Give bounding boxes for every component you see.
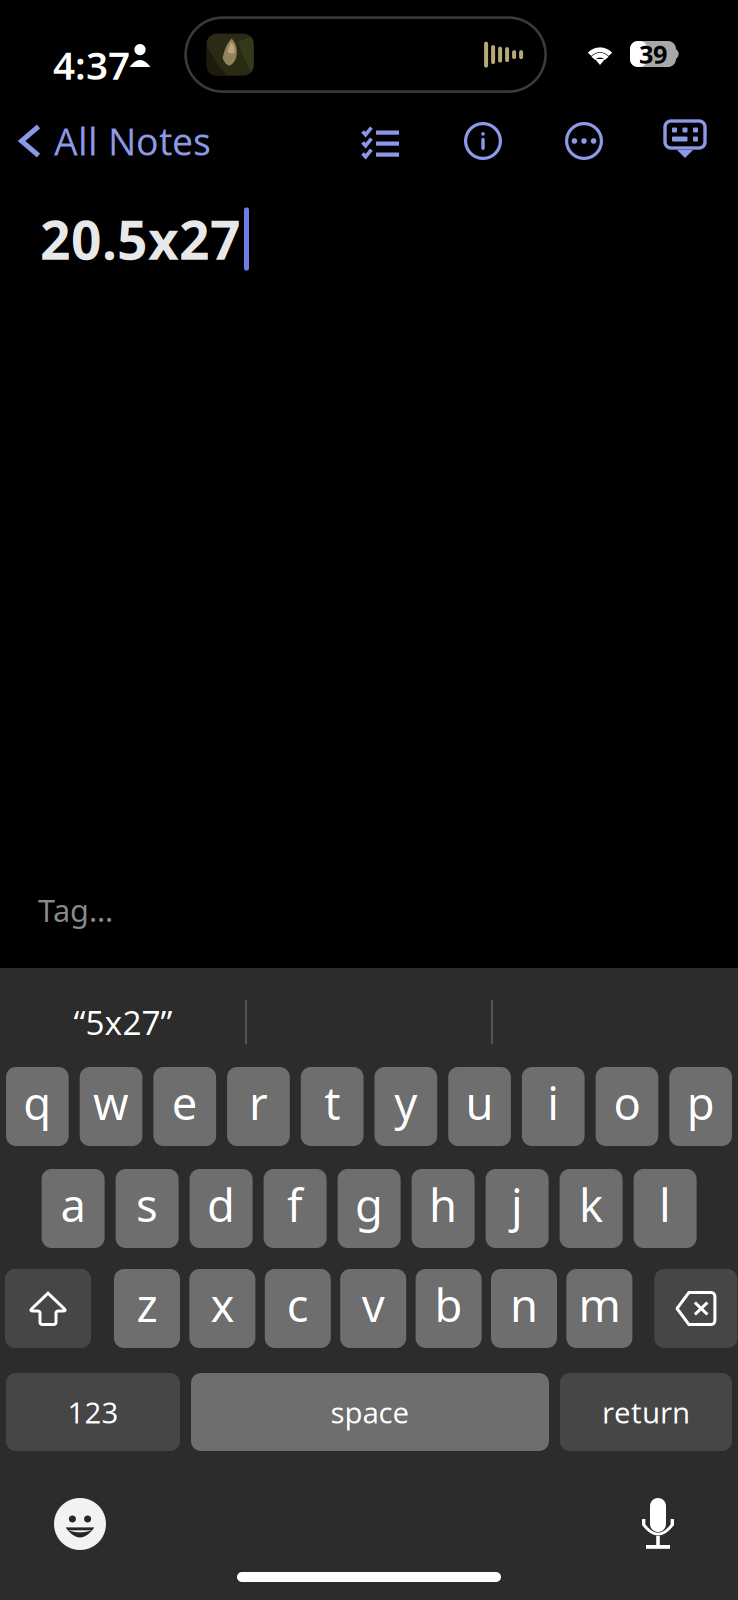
button[interactable]: a — [42, 1169, 105, 1248]
staticText: j — [511, 1174, 523, 1235]
button[interactable]: g — [338, 1169, 401, 1248]
staticText: o — [613, 1072, 640, 1133]
staticText: space — [330, 1392, 409, 1431]
staticText: 123 — [67, 1392, 118, 1431]
staticText: 20.5x27 — [40, 204, 241, 274]
button[interactable]: space — [191, 1373, 549, 1451]
button[interactable]: m — [566, 1269, 632, 1348]
staticText: m — [578, 1274, 620, 1335]
button[interactable]: y — [374, 1067, 437, 1146]
button[interactable]: d — [190, 1169, 253, 1248]
staticText: k — [579, 1174, 603, 1235]
staticText: 4:37 — [53, 39, 130, 90]
button[interactable]: z — [114, 1269, 180, 1348]
button[interactable]: i — [522, 1067, 585, 1146]
staticText: u — [466, 1072, 494, 1133]
button[interactable]: e — [153, 1067, 216, 1146]
button[interactable]: Checklist — [351, 114, 409, 168]
staticText: i — [547, 1072, 559, 1133]
staticText: s — [136, 1174, 158, 1235]
button[interactable]: l — [634, 1169, 697, 1248]
button[interactable]: All Notes — [11, 114, 219, 168]
staticText: “5x27” — [73, 1000, 172, 1044]
button[interactable]: More — [555, 114, 613, 168]
staticText: l — [659, 1174, 671, 1235]
button[interactable]: r — [227, 1067, 290, 1146]
button[interactable]: Emoji — [48, 1492, 112, 1556]
staticText: d — [207, 1174, 235, 1235]
button[interactable]: q — [6, 1067, 69, 1146]
button[interactable]: s — [116, 1169, 179, 1248]
button[interactable]: Dictate — [630, 1495, 686, 1555]
button[interactable]: t — [301, 1067, 363, 1146]
staticText: g — [355, 1174, 383, 1235]
button[interactable]: u — [448, 1067, 511, 1146]
staticText: t — [324, 1072, 340, 1133]
button[interactable]: x — [189, 1269, 255, 1348]
staticText: z — [136, 1274, 157, 1335]
button[interactable]: o — [596, 1067, 658, 1146]
staticText: p — [687, 1072, 715, 1133]
button[interactable]: w — [80, 1067, 142, 1146]
button[interactable]: v — [340, 1269, 406, 1348]
button[interactable]: Tag... — [38, 886, 178, 934]
button[interactable]: 123 — [6, 1373, 180, 1451]
button[interactable]: 20.5x27 — [40, 204, 698, 274]
button[interactable]: f — [264, 1169, 327, 1248]
button[interactable]: k — [560, 1169, 623, 1248]
button[interactable]: return — [560, 1373, 732, 1451]
button[interactable]: b — [416, 1269, 482, 1348]
button[interactable]: Hide Keyboard — [656, 112, 714, 166]
button[interactable]: h — [412, 1169, 475, 1248]
button[interactable]: “5x27” — [0, 996, 246, 1048]
staticText: n — [510, 1274, 538, 1335]
staticText: f — [287, 1174, 303, 1235]
button[interactable]: p — [669, 1067, 732, 1146]
staticText: x — [210, 1274, 234, 1335]
staticText: b — [435, 1274, 463, 1335]
button[interactable]: Info — [454, 114, 512, 168]
staticText: 39 — [639, 37, 667, 71]
button[interactable]: Shift — [5, 1269, 91, 1348]
staticText: h — [429, 1174, 457, 1235]
staticText: v — [362, 1274, 385, 1335]
staticText: w — [93, 1072, 129, 1133]
staticText: a — [61, 1174, 86, 1235]
staticText: q — [23, 1072, 51, 1133]
button[interactable]: Delete — [654, 1269, 737, 1348]
staticText: y — [394, 1072, 417, 1133]
button[interactable]: j — [486, 1169, 549, 1248]
staticText: Tag... — [38, 890, 113, 930]
button[interactable]: c — [265, 1269, 331, 1348]
staticText: e — [172, 1072, 198, 1133]
staticText: All Notes — [54, 116, 211, 166]
staticText: r — [249, 1072, 268, 1133]
staticText: return — [602, 1392, 690, 1431]
staticText: c — [287, 1274, 309, 1335]
button[interactable]: n — [491, 1269, 557, 1348]
